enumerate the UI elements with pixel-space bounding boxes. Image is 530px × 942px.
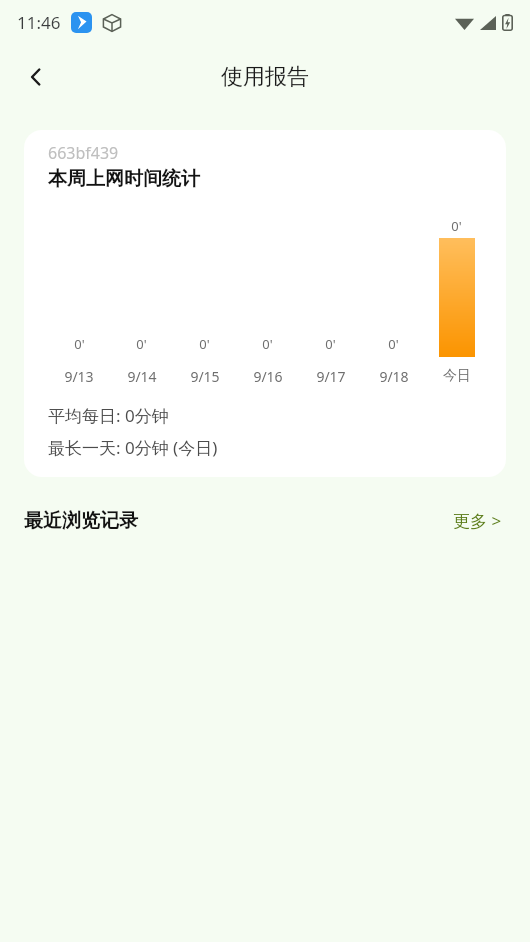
- staticText: 9/13: [64, 367, 94, 386]
- staticText: 11:46: [17, 11, 61, 34]
- staticText: 0': [199, 335, 210, 353]
- staticText: 9/17: [316, 367, 346, 386]
- staticText: 0': [325, 335, 336, 353]
- staticText: 0': [451, 217, 462, 235]
- button[interactable]: Back: [12, 53, 60, 101]
- staticText: 平均每日: 0分钟: [48, 404, 169, 427]
- staticText: 0': [388, 335, 399, 353]
- staticText: 0': [262, 335, 273, 353]
- staticText: 9/16: [253, 367, 283, 386]
- staticText: 9/15: [190, 367, 220, 386]
- staticText: 663bf439: [48, 142, 119, 164]
- staticText: 9/18: [379, 367, 409, 386]
- staticText: 使用报告: [221, 63, 309, 91]
- staticText: 今日: [443, 367, 471, 385]
- staticText: 9/14: [127, 367, 157, 386]
- staticText: 0': [136, 335, 147, 353]
- staticText: 最近浏览记录: [24, 509, 138, 533]
- staticText: 0': [74, 335, 85, 353]
- button[interactable]: 更多 >: [449, 503, 506, 538]
- button[interactable]: 663bf439: [24, 130, 506, 477]
- staticText: 更多 >: [453, 509, 502, 532]
- staticText: 最长一天: 0分钟 (今日): [48, 436, 218, 459]
- staticText: 本周上网时间统计: [48, 167, 200, 191]
